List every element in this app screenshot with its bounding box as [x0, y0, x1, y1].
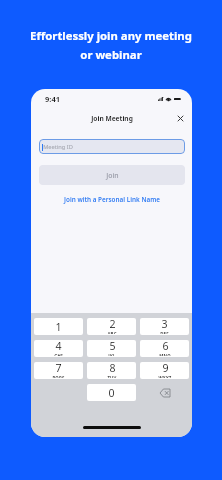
staticText: GHI — [54, 353, 63, 356]
staticText: 5 — [109, 340, 116, 353]
staticText: Effortlessly join any meeting — [30, 28, 192, 43]
staticText: DEF — [160, 331, 169, 334]
button[interactable]: Meeting ID — [39, 139, 185, 154]
button[interactable]: 7 — [34, 362, 83, 379]
button[interactable]: 1 — [34, 318, 83, 335]
staticText: Meeting ID — [43, 143, 73, 151]
staticText: 2 — [109, 318, 116, 331]
staticText: 6 — [162, 340, 169, 353]
button[interactable]: 5 — [87, 340, 136, 357]
staticText: 4 — [55, 340, 62, 353]
button[interactable]: 3 — [140, 318, 189, 335]
staticText: or webinar — [80, 47, 142, 62]
button[interactable]: Close — [175, 113, 186, 124]
button[interactable]: 9 — [140, 362, 189, 379]
button[interactable]: 8 — [87, 362, 136, 379]
staticText: MNO — [159, 353, 171, 356]
staticText: JKL — [108, 353, 116, 356]
button[interactable]: 6 — [140, 340, 189, 357]
button[interactable]: Join with a Personal Link Name — [31, 193, 192, 205]
staticText: 1 — [55, 320, 62, 334]
staticText: 3 — [161, 318, 168, 331]
staticText: TUV — [107, 375, 117, 378]
staticText: PQRS — [52, 375, 65, 378]
staticText: 9 — [162, 362, 169, 375]
staticText: 8 — [109, 362, 116, 375]
staticText: 7 — [55, 362, 62, 375]
button[interactable]: Join — [39, 165, 185, 185]
staticText: ABC — [107, 331, 117, 334]
button[interactable]: 0 — [87, 384, 136, 401]
button[interactable]: 4 — [34, 340, 83, 357]
staticText: Join with a Personal Link Name — [64, 195, 160, 204]
staticText: Join Meeting — [91, 114, 133, 123]
button[interactable]: Backspace — [140, 384, 189, 401]
staticText: 0 — [108, 386, 115, 400]
staticText: Join — [106, 171, 119, 180]
staticText: 9:41 — [45, 94, 60, 104]
button[interactable]: 2 — [87, 318, 136, 335]
staticText: WXYZ — [158, 375, 172, 378]
